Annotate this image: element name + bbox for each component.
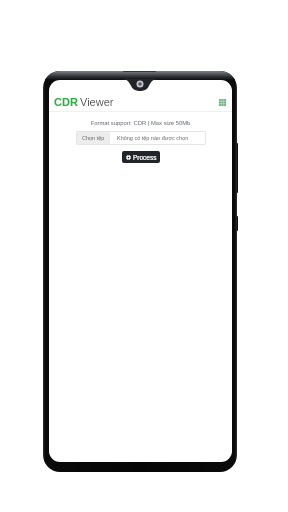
button[interactable]: CDR [54, 96, 114, 108]
button[interactable]: Process [122, 151, 160, 163]
button[interactable]: Chọn tệp [77, 132, 205, 144]
staticText: Process [133, 154, 157, 161]
button[interactable]: Export to Excel [219, 99, 226, 106]
staticText: CDR [54, 96, 78, 108]
staticText: Không có tệp nào được chọn [117, 135, 189, 141]
staticText: Format support: CDR | Max size 50Mb [49, 120, 232, 127]
staticText: Viewer [80, 96, 114, 108]
staticText: Chọn tệp [82, 135, 105, 141]
